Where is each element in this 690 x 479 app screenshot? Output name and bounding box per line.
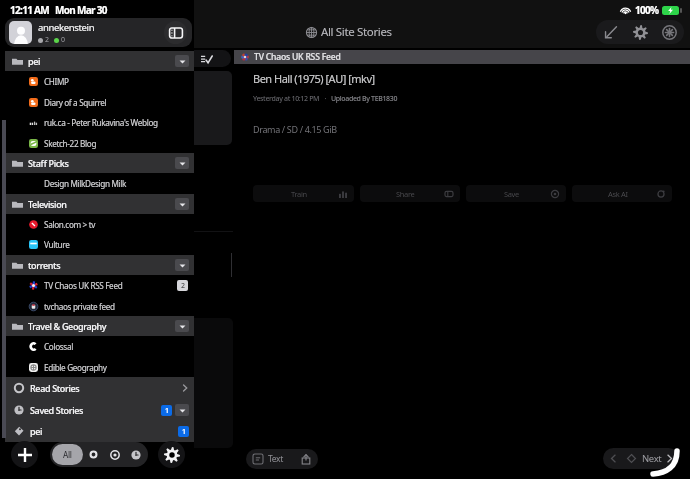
button[interactable]: Salon.com > tv <box>0 214 194 234</box>
button[interactable]: Collapse folder <box>175 259 189 271</box>
staticText: Text <box>268 453 283 465</box>
staticText: 100% <box>635 3 659 17</box>
button[interactable]: Collapse folder <box>175 55 189 67</box>
button[interactable]: Television <box>5 194 194 214</box>
button[interactable]: Staff Picks <box>5 153 194 173</box>
button[interactable]: Text <box>246 449 318 469</box>
button[interactable]: Colossal <box>0 336 194 356</box>
button[interactable]: pei <box>5 420 194 442</box>
staticText: annekenstein <box>38 21 95 34</box>
staticText: Ben Hall (1975) [AU] [mkv] <box>253 71 375 86</box>
button[interactable]: Expand <box>596 20 625 44</box>
staticText: 1 <box>165 406 169 416</box>
button[interactable]: Settings <box>158 441 185 468</box>
staticText: CHIMP <box>44 76 188 87</box>
button[interactable]: CHIMP <box>0 71 194 91</box>
button[interactable]: tvchaos private feed <box>0 296 194 316</box>
staticText: Mon Mar 30 <box>55 3 107 17</box>
button[interactable]: Read Stories <box>5 377 194 399</box>
button[interactable]: Collapse <box>175 404 189 416</box>
button[interactable]: Vulture <box>0 234 194 254</box>
staticText: Television <box>28 198 67 210</box>
button[interactable]: Train <box>253 185 354 202</box>
button[interactable]: Settings <box>625 20 655 44</box>
button[interactable]: Next <box>603 448 679 469</box>
staticText: TV Chaos UK RSS Feed <box>44 280 177 291</box>
button[interactable]: Focus <box>104 444 125 465</box>
staticText: Design MilkDesign Milk <box>44 178 127 189</box>
button[interactable]: pei <box>5 51 194 71</box>
staticText: Sketch-22 Blog <box>44 138 188 149</box>
staticText: Next <box>642 452 662 465</box>
button[interactable]: Recent <box>125 444 146 465</box>
button[interactable]: Account <box>655 20 684 44</box>
staticText: Train <box>291 189 307 199</box>
button[interactable]: Collapse folder <box>175 320 189 332</box>
staticText: Save <box>504 189 519 199</box>
staticText: Ask AI <box>608 189 628 199</box>
button[interactable]: Diary of a Squirrel <box>0 92 194 112</box>
button[interactable]: Edible Geography <box>0 357 194 377</box>
staticText: 1 <box>182 427 186 437</box>
button[interactable]: ruk.ca - Peter Rukavina's Weblog <box>0 112 194 132</box>
staticText: 12:11 AM <box>10 3 50 17</box>
button[interactable]: Share <box>360 185 460 202</box>
button[interactable]: TV Chaos UK RSS Feed <box>0 275 194 295</box>
button[interactable]: Ask AI <box>572 185 672 202</box>
staticText: Read Stories <box>30 382 80 394</box>
staticText: Uploaded By TEB1830 <box>331 94 398 104</box>
staticText: Staff Picks <box>28 157 69 169</box>
button[interactable]: Unread <box>83 444 104 465</box>
button[interactable]: Sketch-22 Blog <box>0 133 194 153</box>
staticText: Drama / SD / 4.15 GiB <box>253 123 337 135</box>
staticText: Salon.com > tv <box>44 219 188 230</box>
staticText: Edible Geography <box>44 362 188 373</box>
button[interactable]: Toggle sidebar <box>164 21 187 44</box>
staticText: Share <box>396 189 415 199</box>
button[interactable]: Collapse folder <box>175 157 189 169</box>
staticText: All <box>63 449 72 460</box>
staticText: Colossal <box>44 341 188 352</box>
staticText: torrents <box>28 259 61 271</box>
staticText: Saved Stories <box>30 404 84 416</box>
button[interactable]: torrents <box>5 255 194 275</box>
staticText: Travel & Geography <box>28 320 107 332</box>
staticText: ruk.ca - Peter Rukavina's Weblog <box>44 117 188 128</box>
button[interactable]: Mark all read <box>186 50 231 67</box>
staticText: Vulture <box>44 239 188 250</box>
staticText: All Site Stories <box>321 24 392 40</box>
button[interactable]: Design MilkDesign Milk <box>0 173 194 193</box>
button[interactable]: Collapse folder <box>175 198 189 210</box>
button[interactable]: Add <box>11 441 38 468</box>
staticText: pei <box>30 425 43 437</box>
button[interactable]: annekenstein <box>5 18 192 47</box>
staticText: TV Chaos UK RSS Feed <box>254 51 341 63</box>
staticText: · <box>320 94 331 104</box>
button[interactable]: Saved Stories <box>5 399 194 421</box>
button[interactable]: Travel & Geography <box>5 316 194 336</box>
staticText: 0 <box>61 35 65 45</box>
staticText: pei <box>28 55 41 67</box>
button[interactable]: Save <box>466 185 566 202</box>
button[interactable]: All <box>52 444 83 465</box>
staticText: Diary of a Squirrel <box>44 97 188 108</box>
staticText: Yesterday at 10:12 PM <box>253 94 320 104</box>
staticText: tvchaos private feed <box>44 301 188 312</box>
staticText: 2 <box>45 35 49 45</box>
staticText: 2 <box>181 281 185 291</box>
